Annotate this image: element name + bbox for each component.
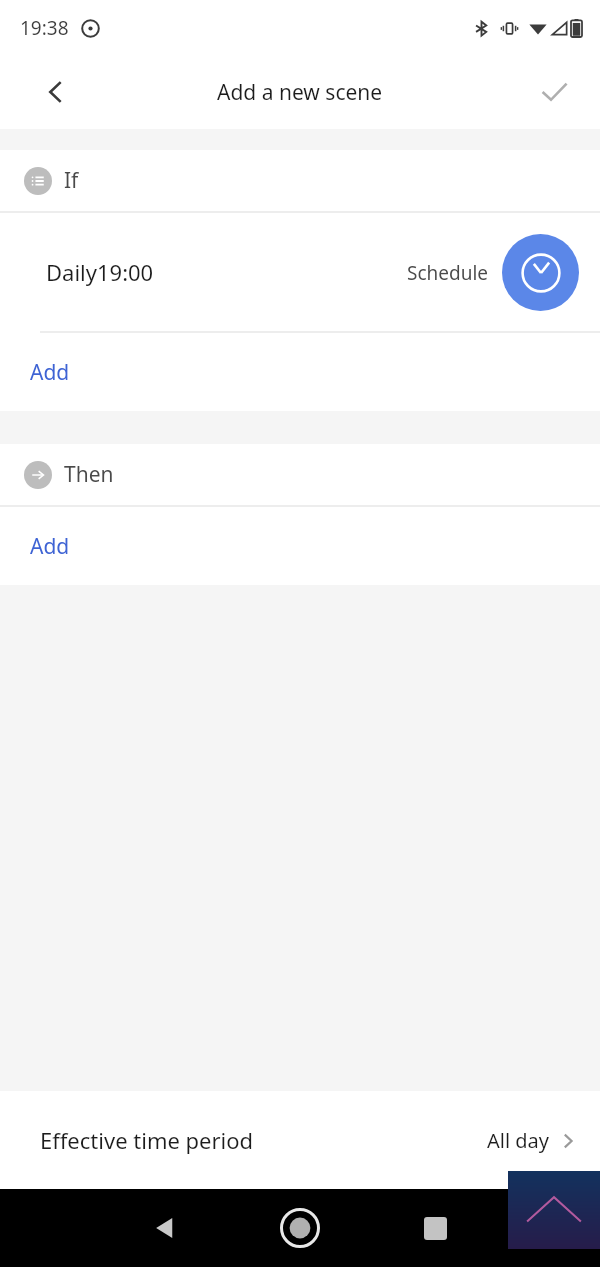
button[interactable]: Daily19:00 [0, 213, 600, 331]
staticText: If [64, 166, 79, 195]
staticText: Effective time period [40, 1125, 254, 1155]
staticText: Add [30, 532, 70, 561]
staticText: Schedule [407, 260, 489, 286]
staticText: All day [487, 1127, 550, 1154]
button[interactable]: Back [28, 64, 84, 120]
staticText: Daily19:00 [46, 257, 154, 287]
button[interactable]: Recent apps [407, 1200, 463, 1256]
button[interactable]: Effective time period [0, 1091, 600, 1189]
button[interactable]: Back [137, 1200, 193, 1256]
button[interactable]: Add [0, 507, 600, 585]
staticText: Add a new scene [217, 78, 383, 107]
button[interactable]: Add [0, 333, 600, 411]
staticText: Add [30, 358, 70, 387]
button[interactable]: Confirm [524, 62, 584, 122]
button[interactable]: Then [0, 444, 600, 505]
staticText: Then [64, 460, 114, 489]
button[interactable]: Overlay control [508, 1171, 600, 1249]
button[interactable]: Home [270, 1198, 330, 1258]
button[interactable]: If [0, 150, 600, 211]
staticText: 19:38 [20, 15, 69, 41]
